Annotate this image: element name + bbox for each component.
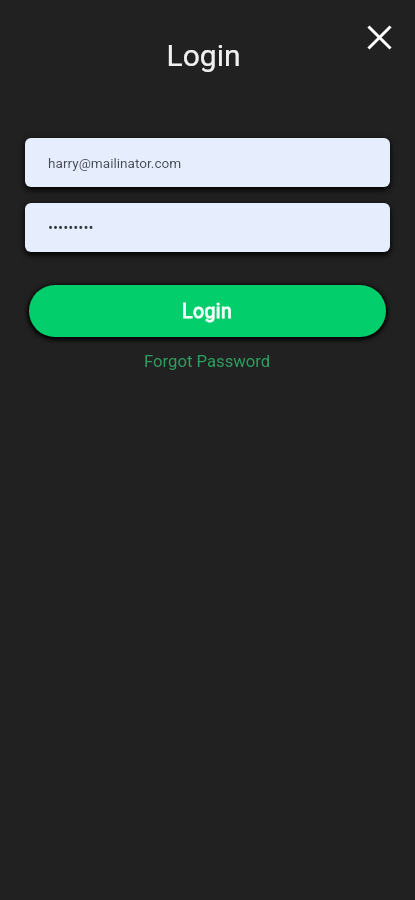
staticText: harry@mailinator.com	[48, 155, 182, 171]
staticText: Login	[182, 300, 233, 323]
staticText: Forgot Password	[144, 352, 271, 372]
staticText: Login	[0, 38, 411, 73]
button[interactable]: Close	[360, 18, 398, 56]
staticText: •••••••••	[48, 219, 94, 237]
button[interactable]: harry@mailinator.com	[25, 138, 390, 187]
button[interactable]: Forgot Password	[25, 348, 390, 376]
button[interactable]: Login	[29, 285, 386, 337]
button[interactable]: •••••••••	[25, 203, 390, 252]
